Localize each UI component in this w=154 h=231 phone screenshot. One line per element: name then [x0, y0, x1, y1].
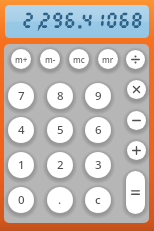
button[interactable]: mc: [69, 49, 89, 69]
staticText: 6: [95, 122, 102, 138]
button[interactable]: Minus: [127, 111, 146, 130]
button[interactable]: 5: [47, 117, 73, 143]
button[interactable]: 2: [47, 152, 73, 178]
button[interactable]: .: [47, 187, 73, 213]
staticText: 8: [57, 88, 64, 104]
button[interactable]: 0: [8, 187, 34, 213]
button[interactable]: Multiply: [127, 80, 146, 99]
button[interactable]: Divide: [126, 50, 145, 69]
button[interactable]: c: [85, 187, 111, 213]
button[interactable]: 3: [85, 152, 111, 178]
staticText: m+: [15, 54, 28, 65]
button[interactable]: mr: [98, 49, 118, 69]
button[interactable]: 4: [8, 117, 34, 143]
staticText: 4: [18, 122, 25, 138]
staticText: 5: [57, 122, 64, 138]
button[interactable]: 6: [85, 117, 111, 143]
staticText: m-: [45, 54, 56, 65]
button[interactable]: 7: [8, 83, 34, 109]
button[interactable]: 1: [8, 152, 34, 178]
button[interactable]: Plus: [127, 141, 146, 160]
staticText: 7: [18, 88, 25, 104]
button[interactable]: 8: [47, 83, 73, 109]
button[interactable]: Equals: [126, 171, 145, 214]
staticText: 9: [95, 88, 102, 104]
button[interactable]: 9: [85, 83, 111, 109]
staticText: 2: [57, 157, 64, 173]
staticText: mc: [73, 54, 85, 65]
button[interactable]: m-: [40, 49, 60, 69]
staticText: mr: [102, 54, 114, 65]
staticText: c: [95, 192, 101, 208]
staticText: 0: [18, 192, 25, 208]
staticText: .: [58, 192, 62, 208]
staticText: 3: [95, 157, 102, 173]
staticText: 1: [18, 157, 25, 173]
button[interactable]: m+: [11, 49, 31, 69]
